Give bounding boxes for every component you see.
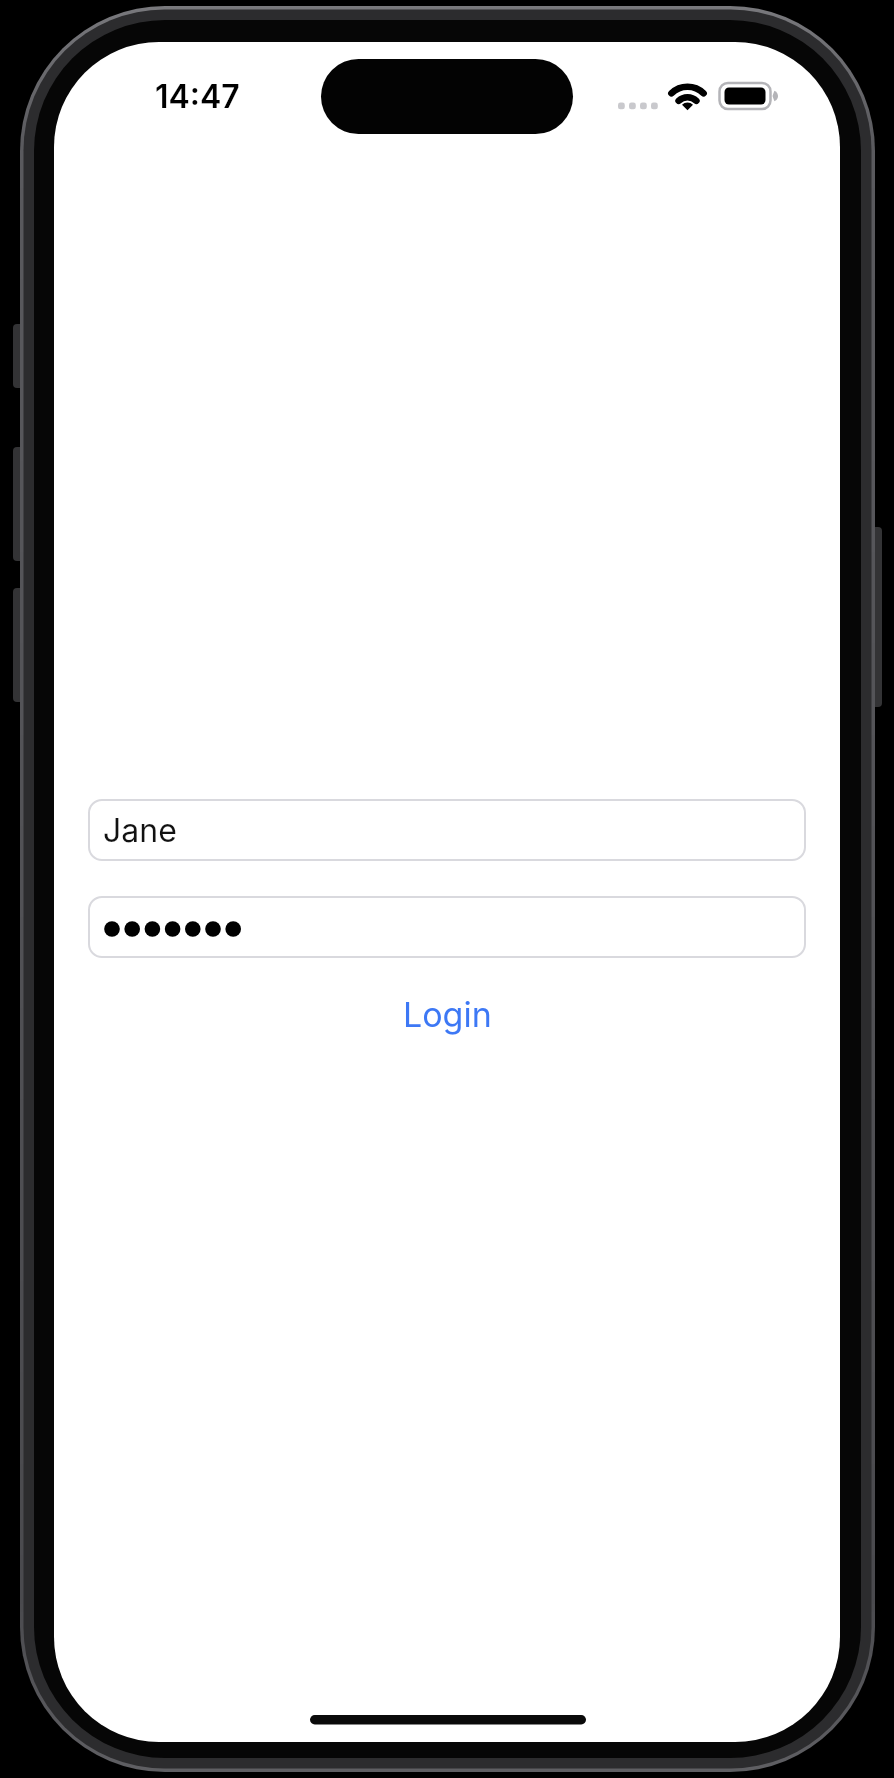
- button[interactable]: [88, 896, 806, 958]
- button[interactable]: Jane: [88, 799, 806, 861]
- staticText: Jane: [103, 811, 177, 850]
- button[interactable]: Login: [387, 988, 507, 1040]
- staticText: Login: [403, 994, 492, 1035]
- staticText: 14:47: [155, 77, 240, 116]
